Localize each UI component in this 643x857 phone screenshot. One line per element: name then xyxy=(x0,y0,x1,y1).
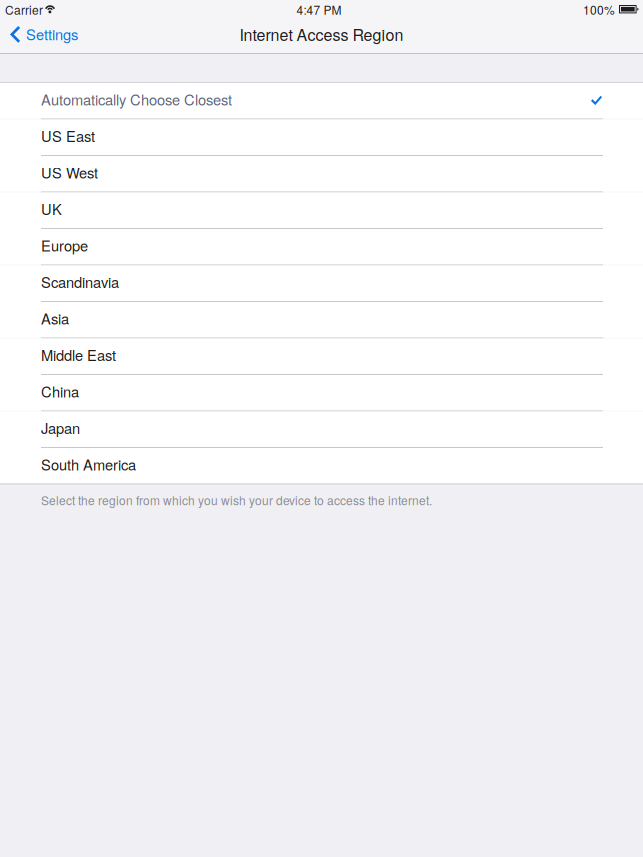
button[interactable]: Middle East xyxy=(0,338,643,375)
button[interactable]: Asia xyxy=(0,302,643,338)
button[interactable]: South America xyxy=(0,448,643,484)
staticText: China xyxy=(41,381,79,402)
staticText: 4:47 PM xyxy=(296,1,341,18)
button[interactable]: Europe xyxy=(0,229,643,265)
staticText: Japan xyxy=(41,417,80,438)
staticText: Carrier xyxy=(5,1,43,18)
staticText: Scandinavia xyxy=(41,271,119,292)
staticText: US West xyxy=(41,162,98,183)
staticText: Asia xyxy=(41,308,69,329)
staticText: 100% xyxy=(583,1,615,18)
staticText: Settings xyxy=(26,23,78,44)
staticText: Automatically Choose Closest xyxy=(41,89,232,110)
staticText: Select the region from which you wish yo… xyxy=(41,491,432,509)
staticText: UK xyxy=(41,198,62,219)
button[interactable]: UK xyxy=(0,192,643,229)
staticText: Middle East xyxy=(41,344,116,365)
button[interactable]: Automatically Choose Closest xyxy=(0,83,643,119)
button[interactable]: Scandinavia xyxy=(0,265,643,302)
button[interactable]: Back to Settings xyxy=(0,19,88,53)
button[interactable]: China xyxy=(0,375,643,411)
staticText: Internet Access Region xyxy=(239,22,403,45)
button[interactable]: US East xyxy=(0,119,643,156)
staticText: South America xyxy=(41,454,136,475)
button[interactable]: Japan xyxy=(0,411,643,448)
staticText: US East xyxy=(41,125,95,146)
button[interactable]: US West xyxy=(0,156,643,192)
staticText: Europe xyxy=(41,235,88,256)
